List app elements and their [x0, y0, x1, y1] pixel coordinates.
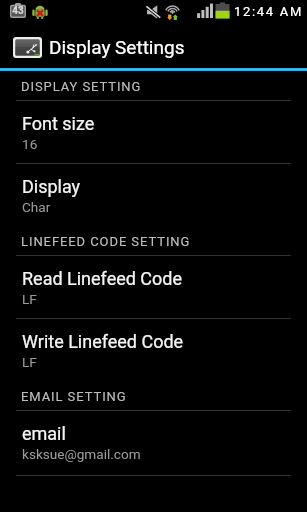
staticText: EMAIL SETTING — [21, 389, 127, 404]
staticText: 43 — [12, 5, 24, 17]
button[interactable]: Font size — [0, 100, 307, 163]
staticText: Char — [22, 199, 51, 215]
staticText: Display Settings — [49, 36, 185, 58]
staticText: 12:44 AM — [234, 4, 304, 19]
staticText: ksksue@gmail.com — [22, 446, 141, 462]
button[interactable]: email — [0, 410, 307, 475]
staticText: Font size — [22, 113, 95, 134]
staticText: 16 — [22, 136, 38, 152]
staticText: email — [22, 423, 66, 444]
button[interactable]: App icon — [0, 24, 307, 68]
staticText: LF — [22, 354, 37, 370]
staticText: LF — [22, 291, 37, 307]
staticText: DISPLAY SETTING — [21, 79, 142, 94]
button[interactable]: Read Linefeed Code — [0, 255, 307, 318]
button[interactable]: Write Linefeed Code — [0, 318, 307, 381]
staticText: Display — [22, 176, 81, 197]
staticText: LINEFEED CODE SETTING — [21, 234, 191, 249]
staticText: Read Linefeed Code — [22, 268, 183, 289]
button[interactable]: Display — [0, 163, 307, 226]
other: App icon — [13, 37, 42, 58]
staticText: Write Linefeed Code — [22, 331, 184, 352]
